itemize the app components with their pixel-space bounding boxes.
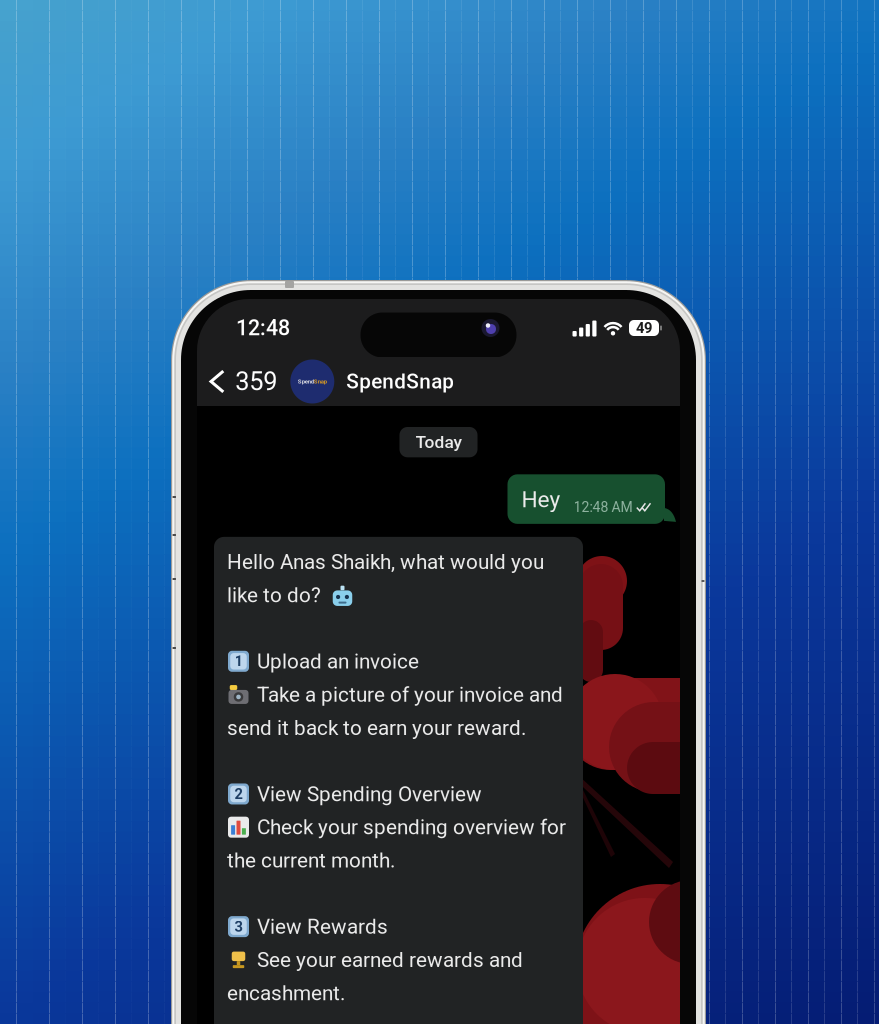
staticText: View Rewards xyxy=(227,915,388,939)
staticText: 2 xyxy=(234,785,242,803)
staticText: Check your spending overview for the cur… xyxy=(227,815,566,873)
staticText: SpendSnap xyxy=(346,369,454,394)
staticText: Hello Anas Shaikh, what would you like t… xyxy=(227,550,544,607)
button[interactable]: Back, 359 unread xyxy=(197,357,281,406)
button[interactable]: Spend xyxy=(281,357,680,406)
staticText: Upload an invoice xyxy=(227,649,419,673)
staticText: Spend xyxy=(298,378,314,385)
staticText: Today xyxy=(415,432,461,452)
staticText: 1 xyxy=(234,653,242,670)
staticText: Snap xyxy=(314,378,327,385)
staticText: Hey xyxy=(521,486,560,513)
staticText: View Spending Overview xyxy=(227,782,482,806)
staticText: Take a picture of your invoice and send … xyxy=(227,682,563,740)
staticText: 3 xyxy=(234,918,242,935)
staticText: See your earned rewards and encashment. xyxy=(227,948,523,1005)
staticText: 12:48 xyxy=(236,315,290,340)
staticText: 359 xyxy=(235,367,277,396)
staticText: 49 xyxy=(636,319,652,337)
staticText: 12:48 AM xyxy=(573,499,632,515)
